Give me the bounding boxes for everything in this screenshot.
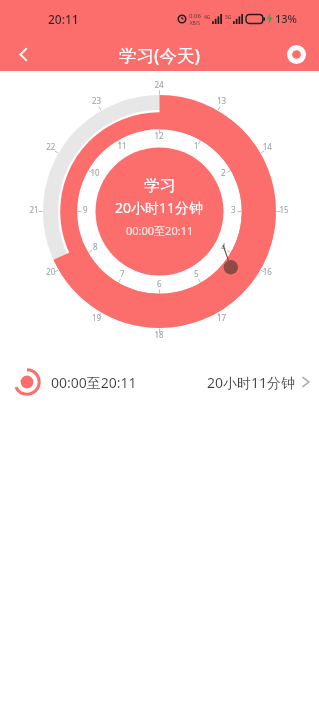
staticText: 0.06 xyxy=(189,12,201,20)
staticText: 20:11 xyxy=(48,11,79,27)
staticText: 20小时11分钟 xyxy=(115,198,204,217)
button[interactable]: Back xyxy=(0,38,46,71)
staticText: 20小时11分钟 xyxy=(207,373,296,392)
staticText: 学习 xyxy=(144,176,176,196)
button[interactable]: 00:00至20:11 xyxy=(0,361,319,403)
staticText: 00:00至20:11 xyxy=(51,373,137,392)
staticText: 13% xyxy=(275,11,297,26)
staticText: 5G xyxy=(225,14,232,21)
button[interactable]: Statistics xyxy=(273,38,319,71)
staticText: 00:00至20:11 xyxy=(126,223,194,238)
staticText: KB/S xyxy=(190,20,200,26)
staticText: 学习(今天) xyxy=(119,43,200,67)
staticText: 4G xyxy=(204,14,211,21)
